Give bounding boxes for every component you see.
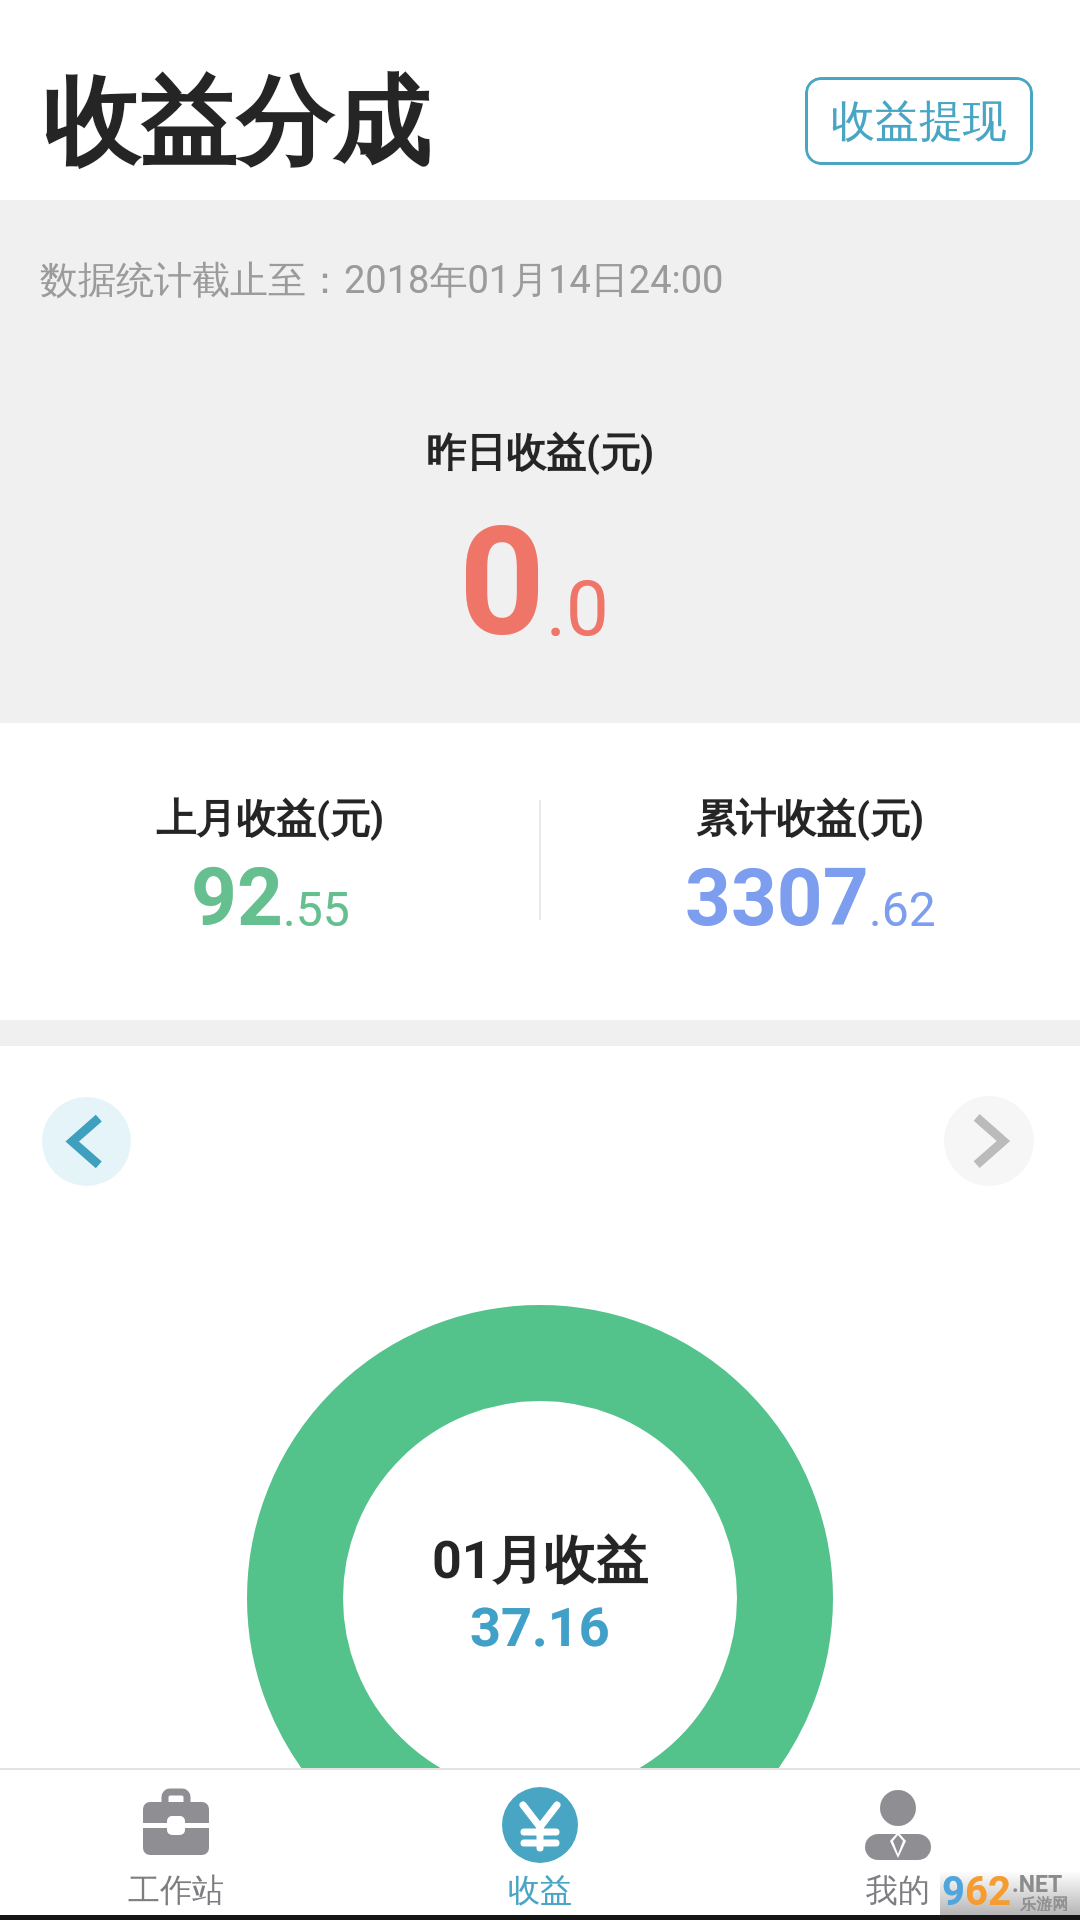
staticText: 收益 <box>508 1870 572 1910</box>
staticText: 收益分成 <box>42 62 430 184</box>
staticText: 9 <box>942 1868 965 1911</box>
staticText: 3307 <box>685 851 869 945</box>
staticText: 37.16 <box>470 1596 610 1659</box>
staticText: 昨日收益(元) <box>426 427 655 477</box>
staticText: .62 <box>869 881 936 937</box>
staticText: .NET <box>1012 1871 1063 1898</box>
button[interactable] <box>42 1097 131 1186</box>
staticText: 62 <box>965 1868 1011 1911</box>
staticText: 收益提现 <box>831 94 1007 149</box>
staticText: .0 <box>546 564 609 653</box>
staticText: 92 <box>191 851 283 945</box>
staticText: 乐游网 <box>1020 1895 1068 1911</box>
staticText: 上月收益(元) <box>156 793 385 843</box>
staticText: .55 <box>283 881 350 937</box>
button[interactable] <box>944 1096 1034 1186</box>
staticText: 01月收益 <box>432 1528 648 1594</box>
button[interactable]: 我的 <box>798 1770 998 1915</box>
staticText: 工作站 <box>128 1870 224 1910</box>
button[interactable]: 工作站 <box>76 1770 276 1915</box>
staticText: 0 <box>459 495 546 671</box>
button[interactable]: 收益提现 <box>805 77 1033 165</box>
staticText: 累计收益(元) <box>696 793 925 843</box>
button[interactable]: 收益 <box>440 1770 640 1915</box>
staticText: 数据统计截止至：2018年01月14日24:00 <box>40 256 724 304</box>
staticText: 我的 <box>866 1870 930 1910</box>
